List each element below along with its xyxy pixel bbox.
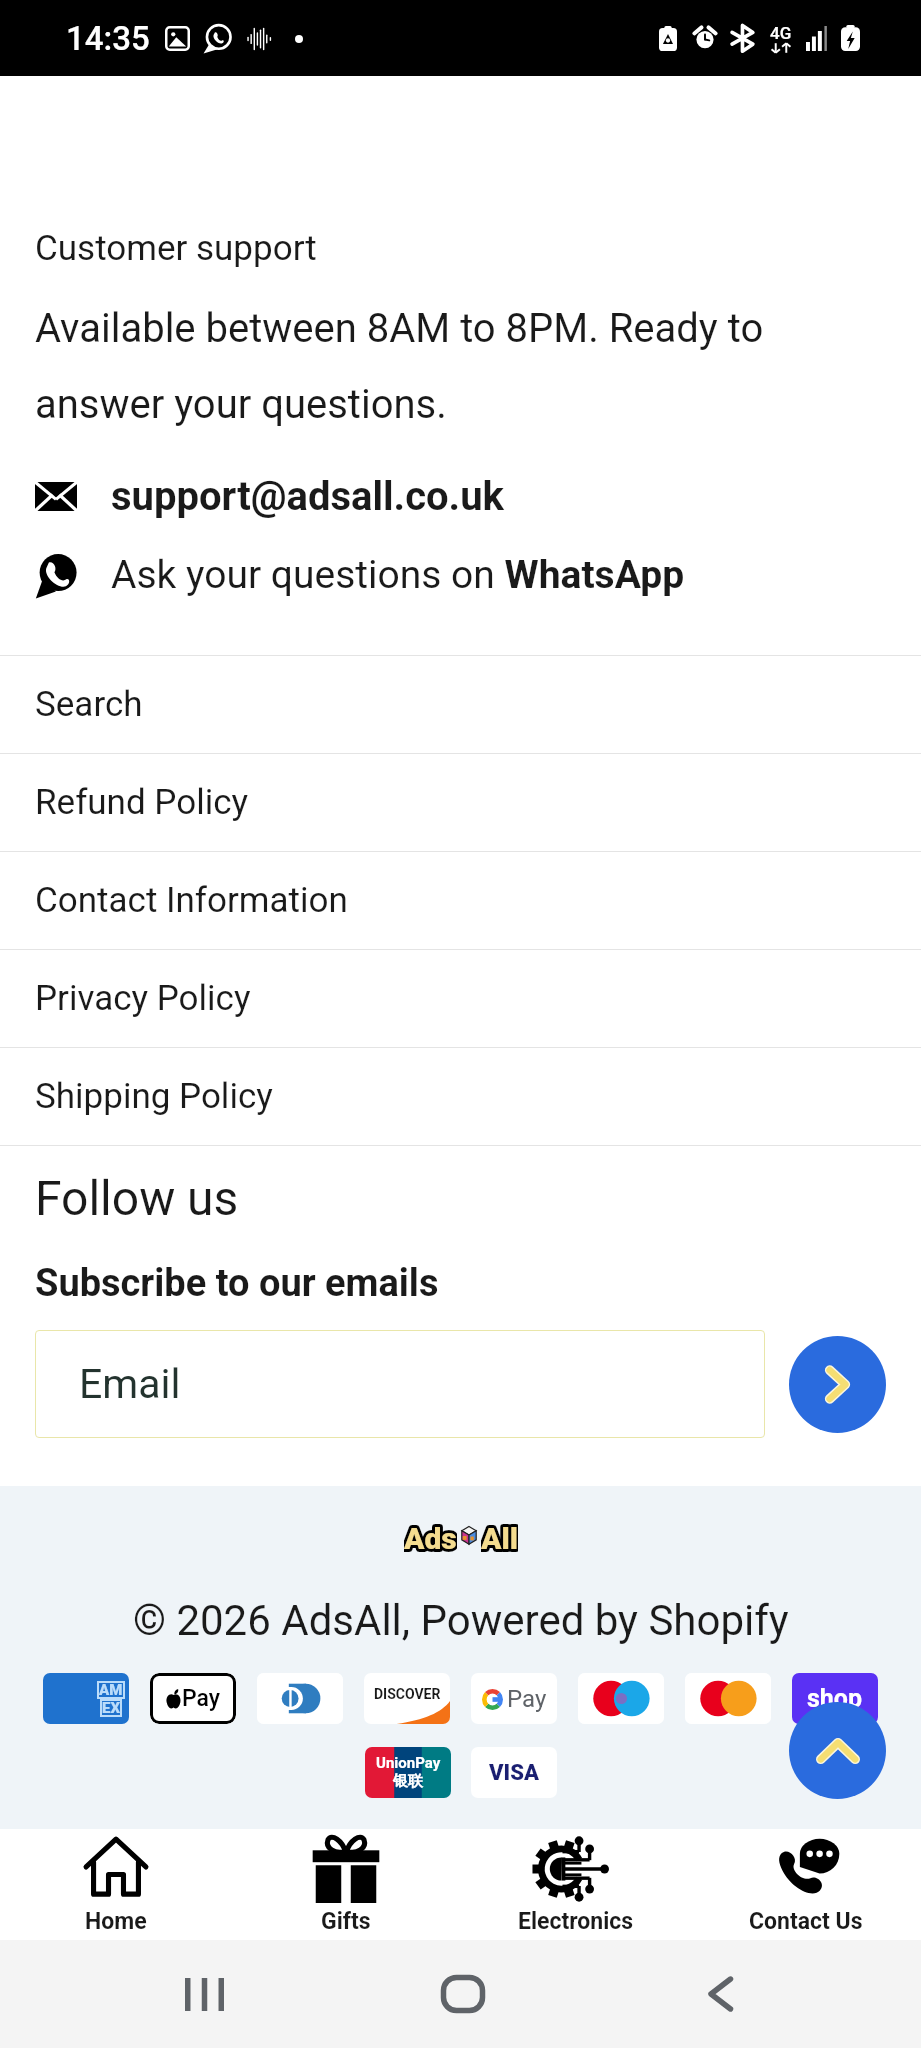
staticText: Refund Policy [35, 782, 249, 823]
staticText: 银联 [393, 1772, 423, 1791]
staticText: © 2026 AdsAll, Powered by Shopify [133, 1596, 789, 1645]
staticText: Electronics [518, 1908, 634, 1935]
button[interactable]: Back [669, 1940, 772, 2048]
button[interactable]: Refund Policy [0, 754, 921, 851]
staticText: Contact Information [35, 880, 348, 921]
button[interactable]: Scroll to top [789, 1702, 886, 1799]
staticText: 4G [770, 23, 792, 43]
button[interactable]: Home [411, 1940, 514, 2048]
staticText: support@adsall.co.uk [111, 473, 504, 520]
button[interactable]: Gifts [231, 1829, 461, 1940]
staticText: shop [807, 1684, 863, 1713]
button[interactable]: support@adsall.co.uk [35, 473, 504, 520]
button[interactable]: Recents [153, 1940, 256, 2048]
staticText: VISA [489, 1760, 539, 1786]
button[interactable]: Electronics [461, 1829, 691, 1940]
button[interactable]: Privacy Policy [0, 950, 921, 1047]
button[interactable]: Ask your questions on WhatsApp [35, 551, 685, 599]
staticText: Contact Us [749, 1908, 863, 1935]
staticText: Pay [507, 1685, 547, 1713]
button[interactable]: Contact Us [691, 1829, 921, 1940]
staticText: Customer support [35, 228, 317, 269]
staticText: Home [85, 1908, 147, 1935]
staticText: 14:35 [66, 19, 150, 58]
button[interactable]: Shipping Policy [0, 1048, 921, 1145]
staticText: Email [79, 1360, 181, 1408]
staticText: Pay [182, 1685, 221, 1712]
button[interactable]: Search [0, 656, 921, 753]
staticText: Follow us [35, 1170, 239, 1226]
staticText: UnionPay [376, 1754, 441, 1772]
staticText: Ads [404, 1521, 457, 1553]
staticText: Privacy Policy [35, 978, 251, 1019]
staticText: Ads [404, 1521, 457, 1553]
staticText: AM [99, 1681, 123, 1699]
staticText: DISCOVER [374, 1686, 441, 1702]
staticText: Ask your questions on WhatsApp [111, 552, 685, 598]
staticText: All [481, 1521, 518, 1553]
button[interactable]: Contact Information [0, 852, 921, 949]
button[interactable]: Home [0, 1829, 231, 1940]
staticText: Search [35, 684, 143, 725]
button[interactable]: Subscribe [789, 1336, 886, 1433]
staticText: EX [102, 1699, 120, 1717]
button[interactable]: Email [35, 1330, 765, 1438]
staticText: Shipping Policy [35, 1076, 273, 1117]
staticText: All [481, 1521, 518, 1553]
staticText: Available between 8AM to 8PM. Ready to a… [35, 305, 886, 428]
staticText: Gifts [321, 1908, 371, 1935]
staticText: Subscribe to our emails [35, 1261, 439, 1306]
